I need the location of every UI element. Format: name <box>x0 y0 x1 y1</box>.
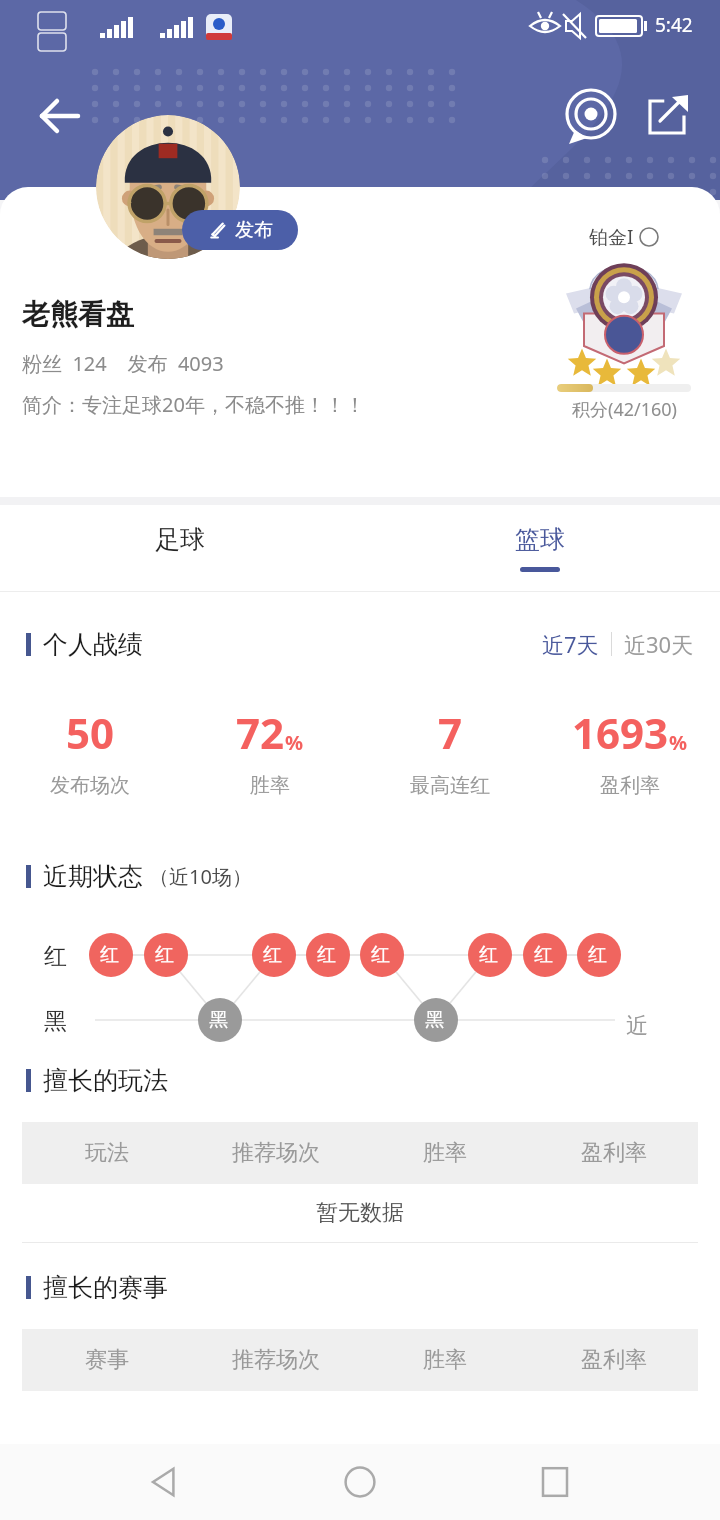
button[interactable]: 近7天 <box>538 629 603 659</box>
staticText: 最高连红 <box>410 773 490 798</box>
staticText: 1693 <box>572 704 669 761</box>
staticText: 近 <box>626 1012 648 1036</box>
button[interactable]: 发布 <box>182 210 298 250</box>
staticText: 擅长的玩法 <box>43 1065 168 1096</box>
staticText: 个人战绩 <box>43 629 143 660</box>
staticText: 篮球 <box>515 524 565 555</box>
staticText: 胜率 <box>423 1346 467 1374</box>
button[interactable]: Share <box>638 87 696 145</box>
button[interactable]: 近30天 <box>620 629 698 659</box>
staticText: 红 <box>534 943 553 967</box>
staticText: % <box>285 729 304 756</box>
staticText: 近7天 <box>542 629 599 659</box>
button[interactable]: 篮球 <box>360 505 720 591</box>
staticText: 红 <box>155 943 174 967</box>
staticText: 胜率 <box>250 773 290 798</box>
staticText: 胜率 <box>423 1139 467 1167</box>
staticText: 铂金I <box>589 224 634 250</box>
staticText: 推荐场次 <box>232 1139 320 1167</box>
button[interactable]: Back <box>30 86 90 146</box>
staticText: 红 <box>317 943 336 967</box>
staticText: 黑 <box>209 1008 228 1032</box>
staticText: 红 <box>479 943 498 967</box>
button[interactable]: 1693 <box>540 704 720 798</box>
staticText: 积分(42/160) <box>572 397 677 422</box>
staticText: 5:42 <box>655 12 693 38</box>
staticText: 黑 <box>425 1008 444 1032</box>
staticText: 50 <box>66 704 115 761</box>
button[interactable]: Back <box>135 1452 195 1512</box>
staticText: 红 <box>44 942 67 971</box>
staticText: 72 <box>236 704 285 761</box>
button[interactable]: 72 <box>180 704 360 798</box>
staticText: 红 <box>100 943 119 967</box>
staticText: 发布 <box>235 218 273 242</box>
staticText: 盈利率 <box>600 773 660 798</box>
staticText: 足球 <box>155 524 205 555</box>
button[interactable]: 足球 <box>0 505 360 591</box>
staticText: 红 <box>588 943 607 967</box>
staticText: 盈利率 <box>581 1346 647 1374</box>
staticText: 近30天 <box>624 629 694 659</box>
staticText: 推荐场次 <box>232 1346 320 1374</box>
staticText: 粉丝 124 发布 4093 <box>22 350 224 377</box>
staticText: 7 <box>438 704 463 761</box>
staticText: 黑 <box>44 1007 67 1036</box>
staticText: （近10场） <box>149 863 252 890</box>
button[interactable]: Recents <box>525 1452 585 1512</box>
staticText: 红 <box>263 943 282 967</box>
button[interactable] <box>0 906 720 1036</box>
button[interactable]: Home <box>330 1452 390 1512</box>
staticText: 暂无数据 <box>316 1199 404 1227</box>
staticText: 擅长的赛事 <box>43 1272 168 1303</box>
button[interactable]: 50 <box>0 704 180 798</box>
staticText: 赛事 <box>85 1346 129 1374</box>
staticText: % <box>669 729 688 756</box>
staticText: 红 <box>371 943 390 967</box>
button[interactable]: 7 <box>360 704 540 798</box>
staticText: 老熊看盘 <box>22 297 134 332</box>
button[interactable]: Avatar <box>96 115 240 259</box>
button[interactable]: Message <box>562 87 620 145</box>
staticText: 盈利率 <box>581 1139 647 1167</box>
staticText: 玩法 <box>85 1139 129 1167</box>
button[interactable]: 铂金I <box>544 224 704 422</box>
staticText: 简介：专注足球20年，不稳不推！！！ <box>22 391 365 418</box>
staticText: 发布场次 <box>50 773 130 798</box>
staticText: 近期状态 <box>43 861 143 892</box>
